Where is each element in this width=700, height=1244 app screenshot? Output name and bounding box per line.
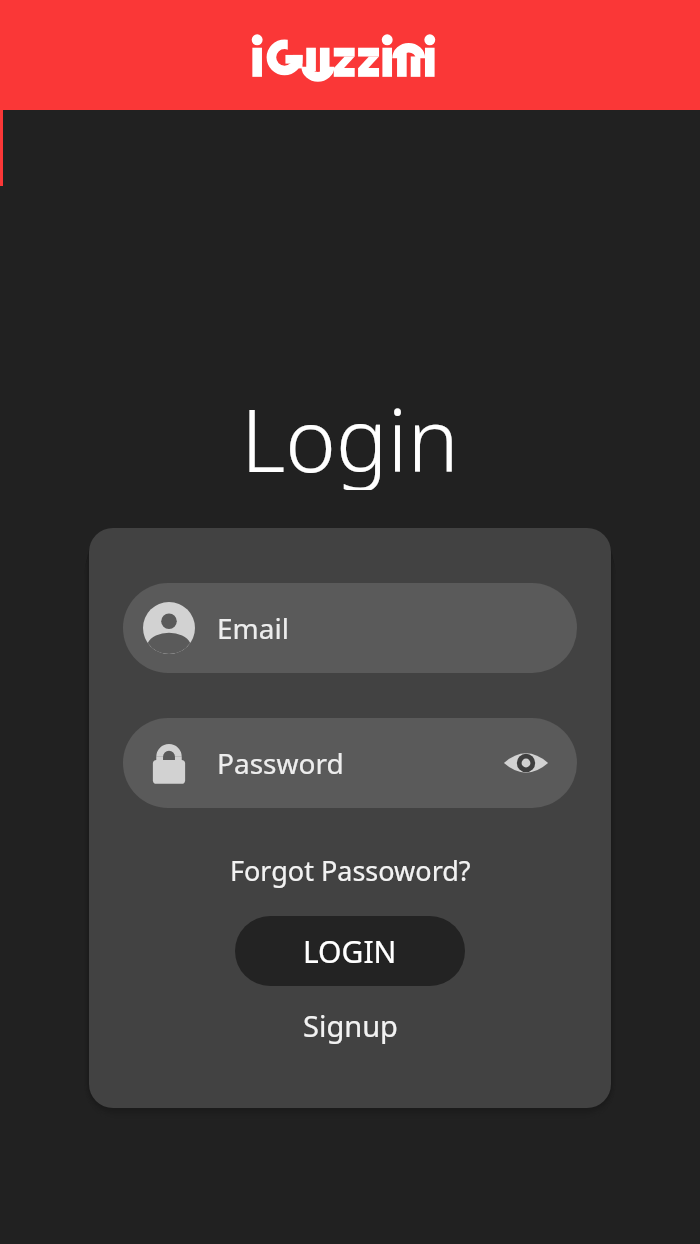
button[interactable]: Forgot Passoword? bbox=[222, 848, 479, 893]
button[interactable]: Show password bbox=[499, 736, 553, 790]
button[interactable]: Password bbox=[123, 718, 577, 808]
staticText: Forgot Passoword? bbox=[230, 852, 471, 889]
staticText: Signup bbox=[303, 1006, 398, 1045]
other: Account bbox=[143, 602, 195, 654]
button[interactable]: LOGIN bbox=[235, 916, 465, 986]
other: Password bbox=[143, 737, 195, 789]
staticText: LOGIN bbox=[303, 931, 397, 972]
staticText: Password bbox=[217, 744, 344, 782]
staticText: Email bbox=[217, 609, 289, 647]
staticText: Login bbox=[241, 380, 459, 490]
button[interactable]: Signup bbox=[293, 1002, 408, 1049]
button[interactable]: Account bbox=[123, 583, 577, 673]
